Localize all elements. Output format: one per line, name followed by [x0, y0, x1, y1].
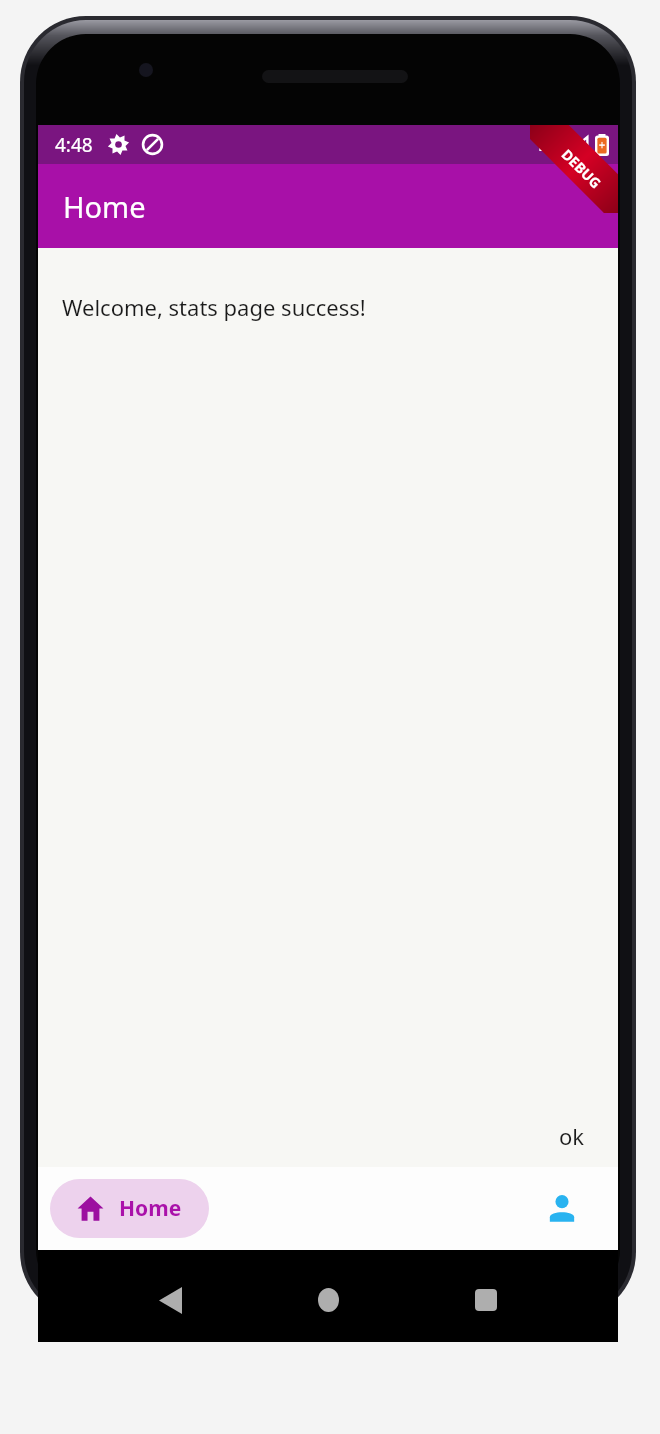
staticText: LTE	[538, 134, 564, 156]
button[interactable]: Home	[50, 1179, 209, 1238]
staticText: ok	[559, 1121, 585, 1151]
staticText: Home	[119, 1194, 182, 1223]
staticText: Home	[63, 187, 146, 226]
button[interactable]: Home	[302, 1274, 354, 1326]
button[interactable]: Back	[144, 1274, 196, 1326]
button[interactable]: Profile	[534, 1181, 590, 1237]
staticText: Welcome, stats page success!	[62, 292, 366, 322]
button[interactable]: Recent apps	[460, 1274, 512, 1326]
staticText: 4:48	[55, 132, 93, 158]
staticText: DEBUG	[557, 144, 606, 193]
